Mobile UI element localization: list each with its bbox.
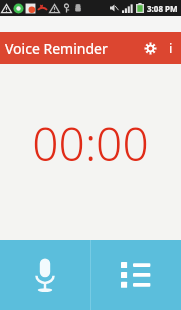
staticText: 3:08 PM bbox=[147, 3, 178, 14]
staticText: Voice Reminder bbox=[5, 39, 108, 58]
button[interactable]: Settings bbox=[139, 32, 161, 64]
staticText: 00:00 bbox=[32, 112, 149, 175]
button[interactable]: Record voice reminder bbox=[0, 240, 90, 310]
button[interactable]: Reminder list bbox=[91, 240, 181, 310]
staticText: i bbox=[169, 39, 173, 57]
button[interactable]: About bbox=[161, 32, 181, 64]
